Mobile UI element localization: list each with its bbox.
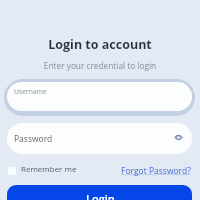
staticText: Login — [86, 191, 115, 200]
staticText: Login to account — [0, 36, 200, 53]
button[interactable]: Remember me — [8, 165, 77, 176]
button[interactable]: Password — [7, 123, 192, 154]
button[interactable]: Forgot Password? — [121, 165, 191, 177]
staticText: Password — [14, 133, 53, 145]
staticText: Enter your credential to login — [0, 60, 200, 71]
button[interactable]: Show password — [172, 131, 185, 144]
button[interactable]: Login — [7, 185, 192, 200]
staticText: Username — [14, 87, 47, 96]
staticText: Remember me — [21, 163, 77, 174]
button[interactable]: Username — [7, 82, 192, 111]
